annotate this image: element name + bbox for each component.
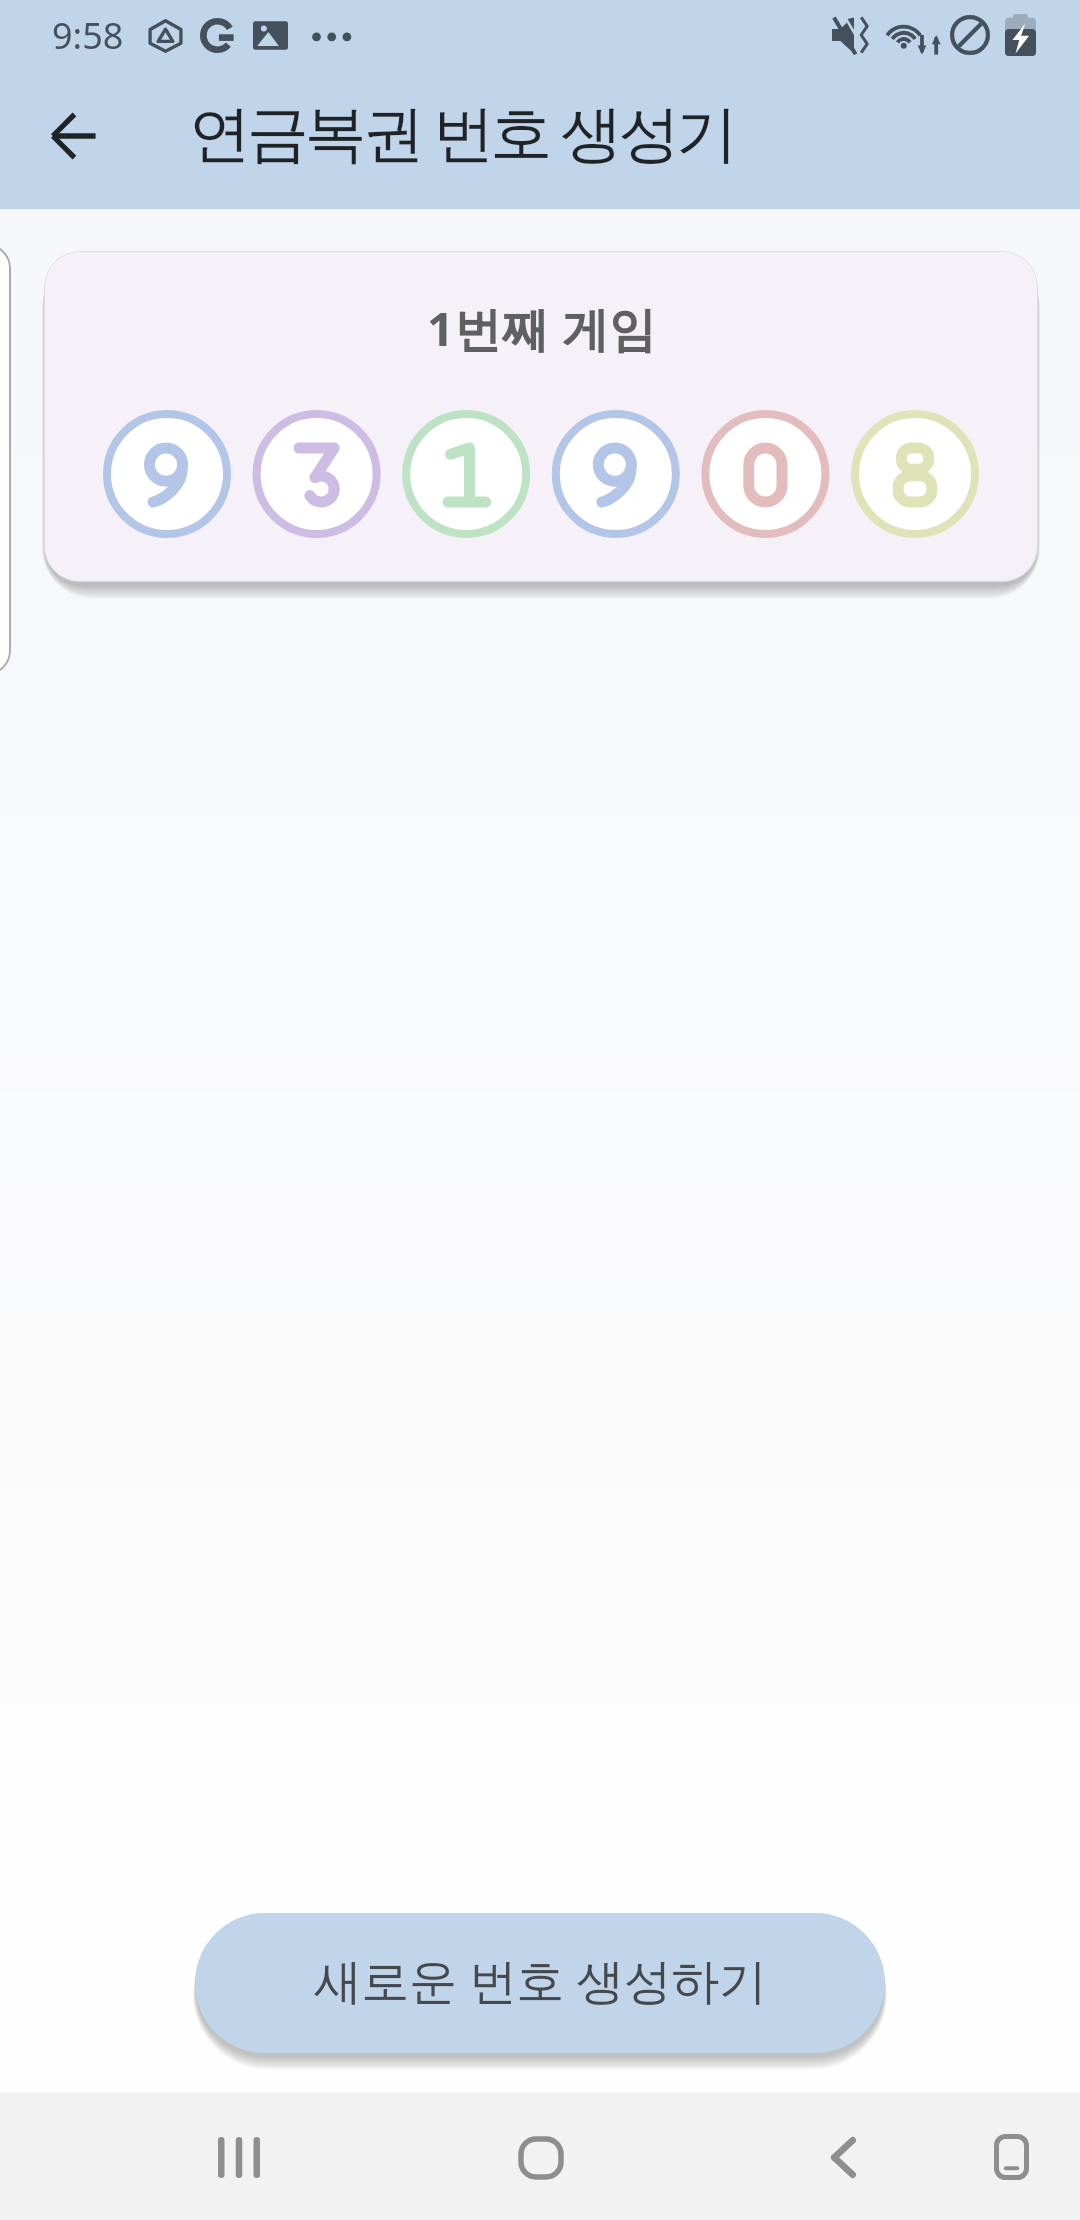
button[interactable]: Change keyboard	[956, 2102, 1066, 2212]
staticText: 1번째 게임	[427, 296, 657, 360]
staticText: 연금복권 번호 생성기	[189, 89, 735, 174]
button[interactable]: 1번째 게임	[44, 251, 1038, 582]
button[interactable]: Home	[485, 2102, 595, 2212]
staticText: 9:58	[52, 11, 124, 60]
staticText: 새로운 번호 생성하기	[314, 1947, 767, 2013]
button[interactable]: Recent apps	[184, 2102, 294, 2212]
button[interactable]: 새로운 번호 생성하기	[195, 1913, 885, 2053]
button[interactable]: Back	[26, 88, 122, 184]
button[interactable]: Back	[788, 2102, 898, 2212]
